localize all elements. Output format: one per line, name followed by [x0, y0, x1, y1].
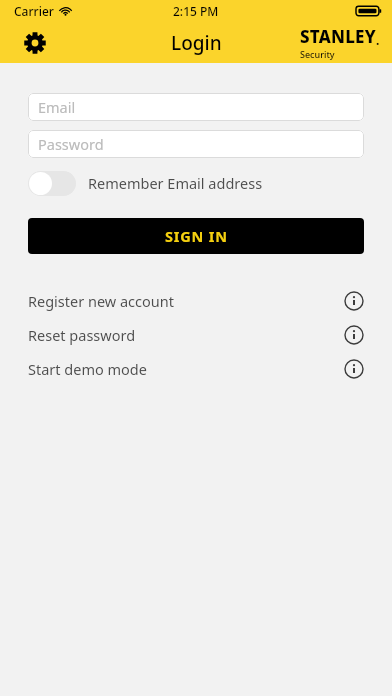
staticText: 2:15 PM — [173, 3, 219, 19]
staticText: Remember Email address — [88, 173, 263, 193]
staticText: Reset password — [28, 325, 344, 345]
staticText: . — [376, 32, 380, 48]
staticText: Login — [171, 30, 222, 56]
button[interactable]: Password — [28, 130, 364, 158]
button[interactable]: Settings — [20, 28, 50, 58]
staticText: Register new account — [28, 291, 344, 311]
staticText: Carrier — [14, 3, 54, 19]
staticText: Password — [38, 134, 104, 154]
button[interactable]: Register new account — [0, 284, 392, 318]
staticText: Security — [300, 48, 335, 60]
staticText: Email — [38, 97, 76, 117]
button[interactable]: SIGN IN — [28, 218, 364, 254]
staticText: SIGN IN — [165, 226, 228, 246]
staticText: STANLEY — [300, 25, 376, 48]
button[interactable]: Start demo mode — [0, 352, 392, 386]
button[interactable]: Reset password — [0, 318, 392, 352]
staticText: Start demo mode — [28, 359, 344, 379]
button[interactable]: Email — [28, 93, 364, 121]
button[interactable]: Remember Email address — [28, 170, 364, 196]
